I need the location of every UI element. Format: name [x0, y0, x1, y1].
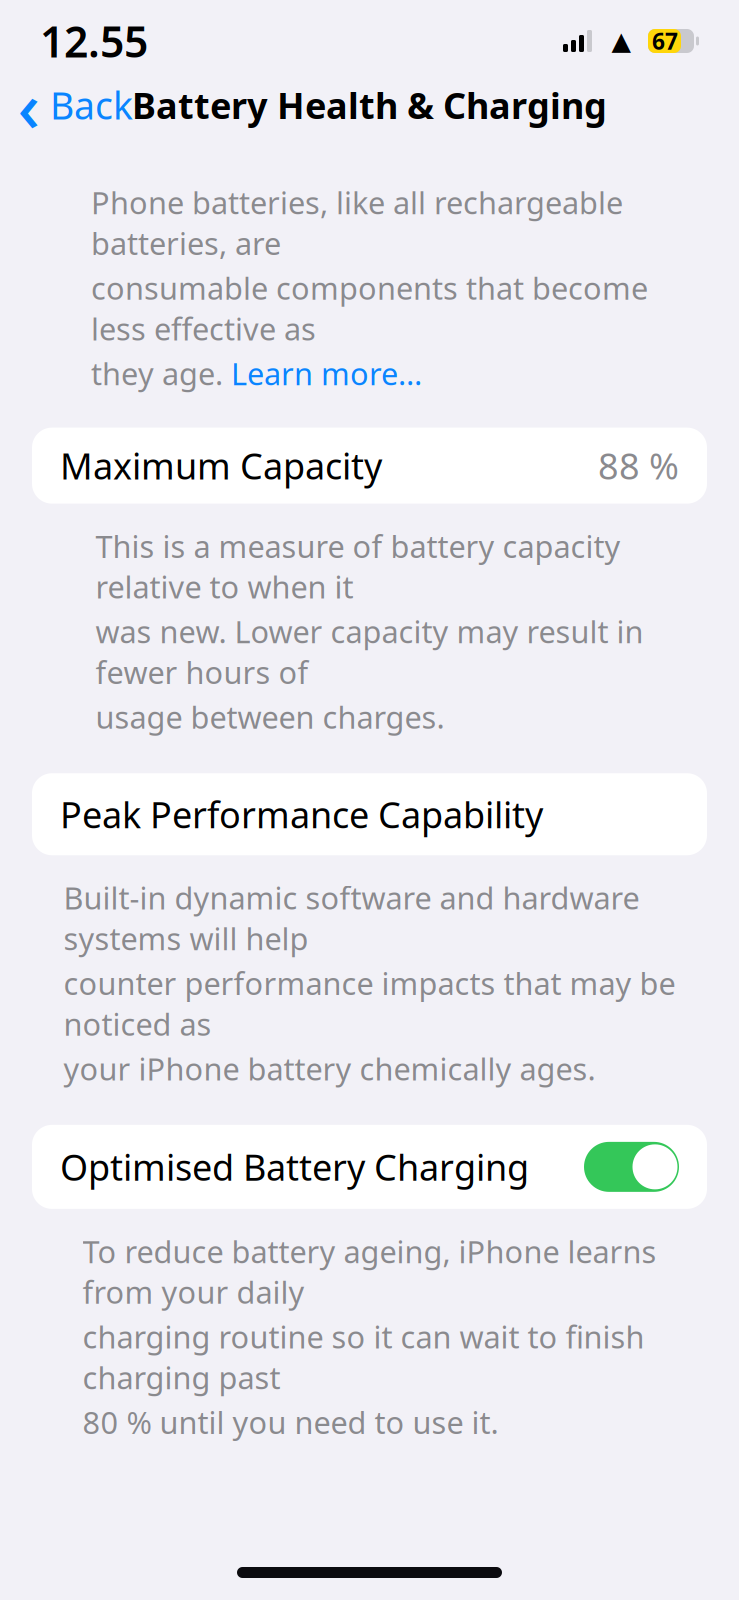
- staticText: 88 %: [598, 442, 679, 489]
- staticText: was new. Lower capacity may result in fe…: [95, 611, 643, 692]
- button[interactable]: Learn more…: [231, 353, 422, 394]
- staticText: Phone batteries, like all rechargeable b…: [91, 182, 623, 263]
- button[interactable]: Maximum Capacity: [32, 428, 707, 504]
- staticText: Maximum Capacity: [60, 442, 382, 489]
- staticText: Built-in dynamic software and hardware s…: [63, 877, 639, 959]
- staticText: To reduce battery ageing, iPhone learns …: [82, 1231, 656, 1312]
- staticText: usage between charges.: [95, 696, 444, 737]
- staticText: consumable components that become less e…: [91, 267, 648, 349]
- staticText: Battery Health & Charging: [132, 81, 607, 129]
- staticText: counter performance impacts that may be …: [63, 963, 675, 1044]
- staticText: they age.: [91, 353, 231, 394]
- button[interactable]: Peak Performance Capability: [32, 773, 707, 855]
- staticText: charging routine so it can wait to finis…: [82, 1316, 644, 1398]
- staticText: Back: [50, 80, 133, 130]
- button[interactable]: Optimised Battery Charging: [32, 1125, 707, 1209]
- staticText: This is a measure of battery capacity re…: [95, 526, 620, 607]
- staticText: Optimised Battery Charging: [60, 1143, 529, 1191]
- button[interactable]: ‹: [0, 74, 133, 136]
- staticText: ▲: [611, 27, 630, 55]
- staticText: 12.55: [40, 13, 148, 69]
- staticText: your iPhone battery chemically ages.: [63, 1048, 595, 1089]
- staticText: Learn more…: [231, 353, 422, 394]
- staticText: Peak Performance Capability: [60, 790, 543, 838]
- staticText: 67: [652, 26, 678, 56]
- staticText: 80 % until you need to use it.: [82, 1402, 498, 1442]
- staticText: ‹: [17, 59, 40, 151]
